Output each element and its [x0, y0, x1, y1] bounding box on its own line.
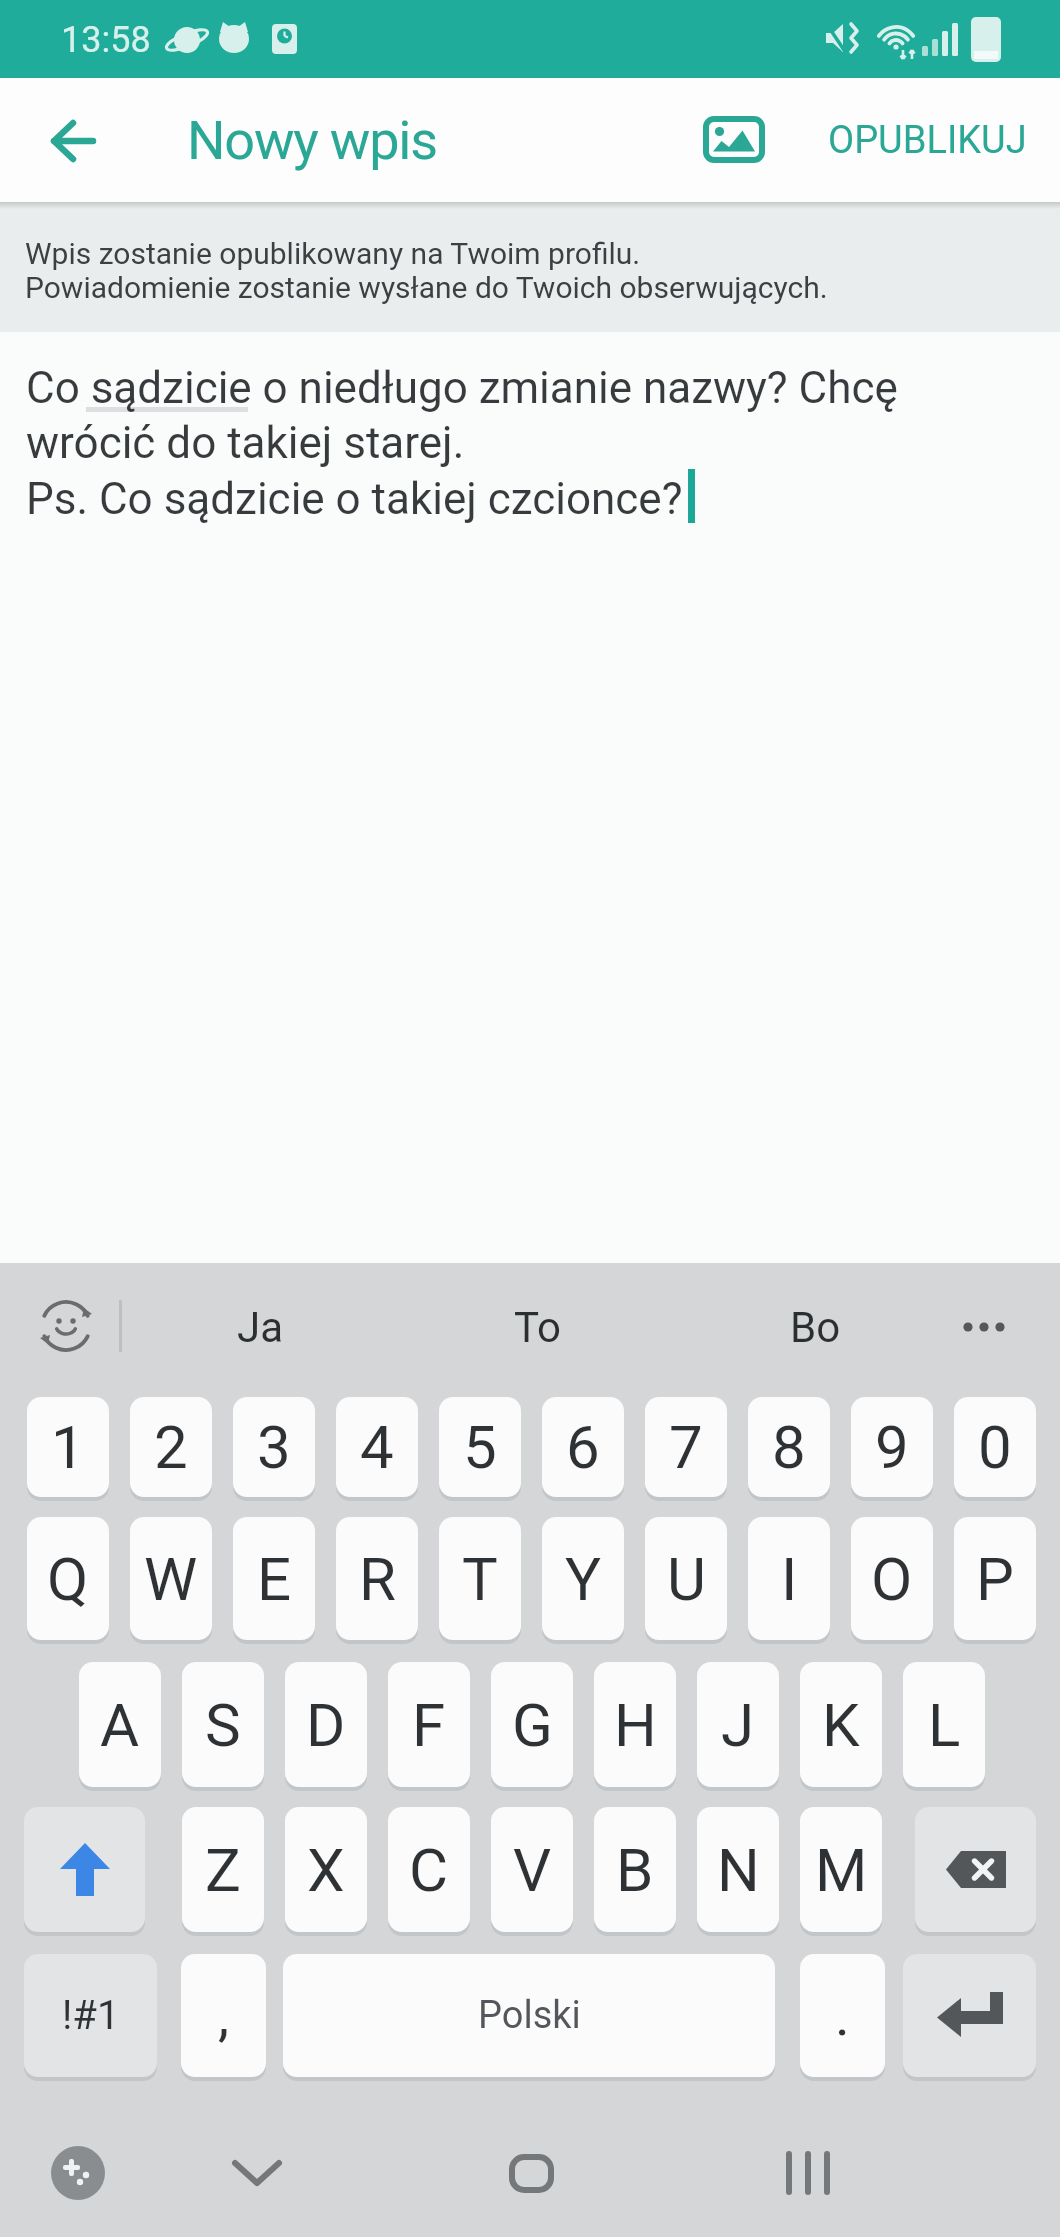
button[interactable] — [690, 95, 778, 183]
staticText: Co sądzicie o niedługo zmianie nazwy? Ch… — [26, 362, 898, 525]
staticText: 3 — [257, 1412, 291, 1482]
staticText: Wpis zostanie opublikowany na Twoim prof… — [25, 236, 828, 305]
button[interactable]: C — [388, 1807, 470, 1932]
button[interactable]: K — [800, 1662, 882, 1787]
button[interactable]: 3 — [233, 1397, 315, 1497]
staticText: 1 — [51, 1412, 85, 1482]
button[interactable]: I — [748, 1517, 830, 1640]
staticText: Q — [47, 1544, 89, 1614]
button[interactable]: Z — [182, 1807, 264, 1932]
button[interactable] — [903, 1954, 1036, 2077]
staticText: . — [835, 1983, 850, 2049]
button[interactable] — [501, 2143, 561, 2203]
staticText: W — [144, 1544, 198, 1614]
button[interactable]: P — [954, 1517, 1036, 1640]
staticText: T — [462, 1544, 498, 1614]
staticText: 4 — [360, 1412, 394, 1482]
button[interactable]: S — [182, 1662, 264, 1787]
button[interactable]: J — [697, 1662, 779, 1787]
staticText: S — [205, 1690, 241, 1760]
button[interactable]: E — [233, 1517, 315, 1640]
button[interactable]: B — [594, 1807, 676, 1932]
staticText: Polski — [478, 1993, 581, 2038]
staticText: B — [616, 1835, 654, 1905]
button[interactable] — [950, 1297, 1022, 1357]
button[interactable]: W — [130, 1517, 212, 1640]
button[interactable]: To — [447, 1297, 627, 1357]
button[interactable]: V — [491, 1807, 573, 1932]
button[interactable]: 6 — [542, 1397, 624, 1497]
button[interactable]: 4 — [336, 1397, 418, 1497]
staticText: 2 — [154, 1412, 188, 1482]
staticText: M — [815, 1835, 868, 1905]
button[interactable]: T — [439, 1517, 521, 1640]
button[interactable]: R — [336, 1517, 418, 1640]
button[interactable]: 7 — [645, 1397, 727, 1497]
button[interactable]: L — [903, 1662, 985, 1787]
staticText: To — [514, 1303, 561, 1352]
button[interactable]: Polski — [283, 1954, 775, 2077]
staticText: L — [928, 1690, 961, 1760]
staticText: O — [871, 1544, 913, 1614]
button[interactable]: 5 — [439, 1397, 521, 1497]
staticText: Ja — [237, 1303, 284, 1352]
staticText: OPUBLIKUJ — [828, 118, 1027, 163]
button[interactable]: N — [697, 1807, 779, 1932]
staticText: Nowy wpis — [187, 109, 437, 172]
button[interactable]: O — [851, 1517, 933, 1640]
button[interactable]: Bo — [725, 1297, 905, 1357]
staticText: H — [614, 1690, 657, 1760]
button[interactable] — [915, 1807, 1036, 1932]
staticText: D — [306, 1690, 346, 1760]
staticText: K — [822, 1690, 860, 1760]
staticText: C — [409, 1835, 449, 1905]
button[interactable] — [32, 1292, 100, 1360]
staticText: !#1 — [62, 1992, 120, 2039]
button[interactable]: F — [388, 1662, 470, 1787]
staticText: X — [307, 1835, 345, 1905]
button[interactable]: 0 — [954, 1397, 1036, 1497]
button[interactable]: 9 — [851, 1397, 933, 1497]
staticText: A — [100, 1690, 140, 1760]
button[interactable] — [48, 2143, 108, 2203]
staticText: I — [781, 1544, 798, 1614]
button[interactable]: Q — [27, 1517, 109, 1640]
button[interactable]: 1 — [27, 1397, 109, 1497]
staticText: 13:58 — [61, 19, 151, 61]
button[interactable]: OPUBLIKUJ — [810, 98, 1045, 182]
button[interactable]: H — [594, 1662, 676, 1787]
staticText: 6 — [566, 1412, 600, 1482]
staticText: 9 — [875, 1412, 909, 1482]
staticText: G — [512, 1690, 553, 1760]
button[interactable]: U — [645, 1517, 727, 1640]
staticText: 8 — [772, 1412, 806, 1482]
button[interactable]: G — [491, 1662, 573, 1787]
button[interactable] — [28, 96, 118, 186]
staticText: N — [717, 1835, 760, 1905]
button[interactable]: !#1 — [24, 1954, 157, 2077]
button[interactable]: D — [285, 1662, 367, 1787]
button[interactable] — [24, 1807, 145, 1932]
button[interactable]: M — [800, 1807, 882, 1932]
button[interactable]: . — [800, 1954, 885, 2077]
staticText: Z — [205, 1835, 241, 1905]
button[interactable] — [222, 2143, 292, 2203]
staticText: E — [257, 1544, 292, 1614]
button[interactable]: 8 — [748, 1397, 830, 1497]
button[interactable]: Y — [542, 1517, 624, 1640]
staticText: U — [667, 1544, 706, 1614]
button[interactable]: Ja — [170, 1297, 350, 1357]
staticText: J — [721, 1690, 755, 1760]
button[interactable]: X — [285, 1807, 367, 1932]
staticText: Y — [565, 1544, 602, 1614]
staticText: 0 — [978, 1412, 1012, 1482]
button[interactable] — [778, 2143, 838, 2203]
button[interactable]: 2 — [130, 1397, 212, 1497]
staticText: 5 — [463, 1412, 497, 1482]
button[interactable]: , — [181, 1954, 266, 2077]
staticText: R — [359, 1544, 396, 1614]
staticText: , — [218, 1983, 230, 2049]
staticText: 7 — [669, 1412, 703, 1482]
staticText: P — [976, 1544, 1014, 1614]
button[interactable]: A — [79, 1662, 161, 1787]
